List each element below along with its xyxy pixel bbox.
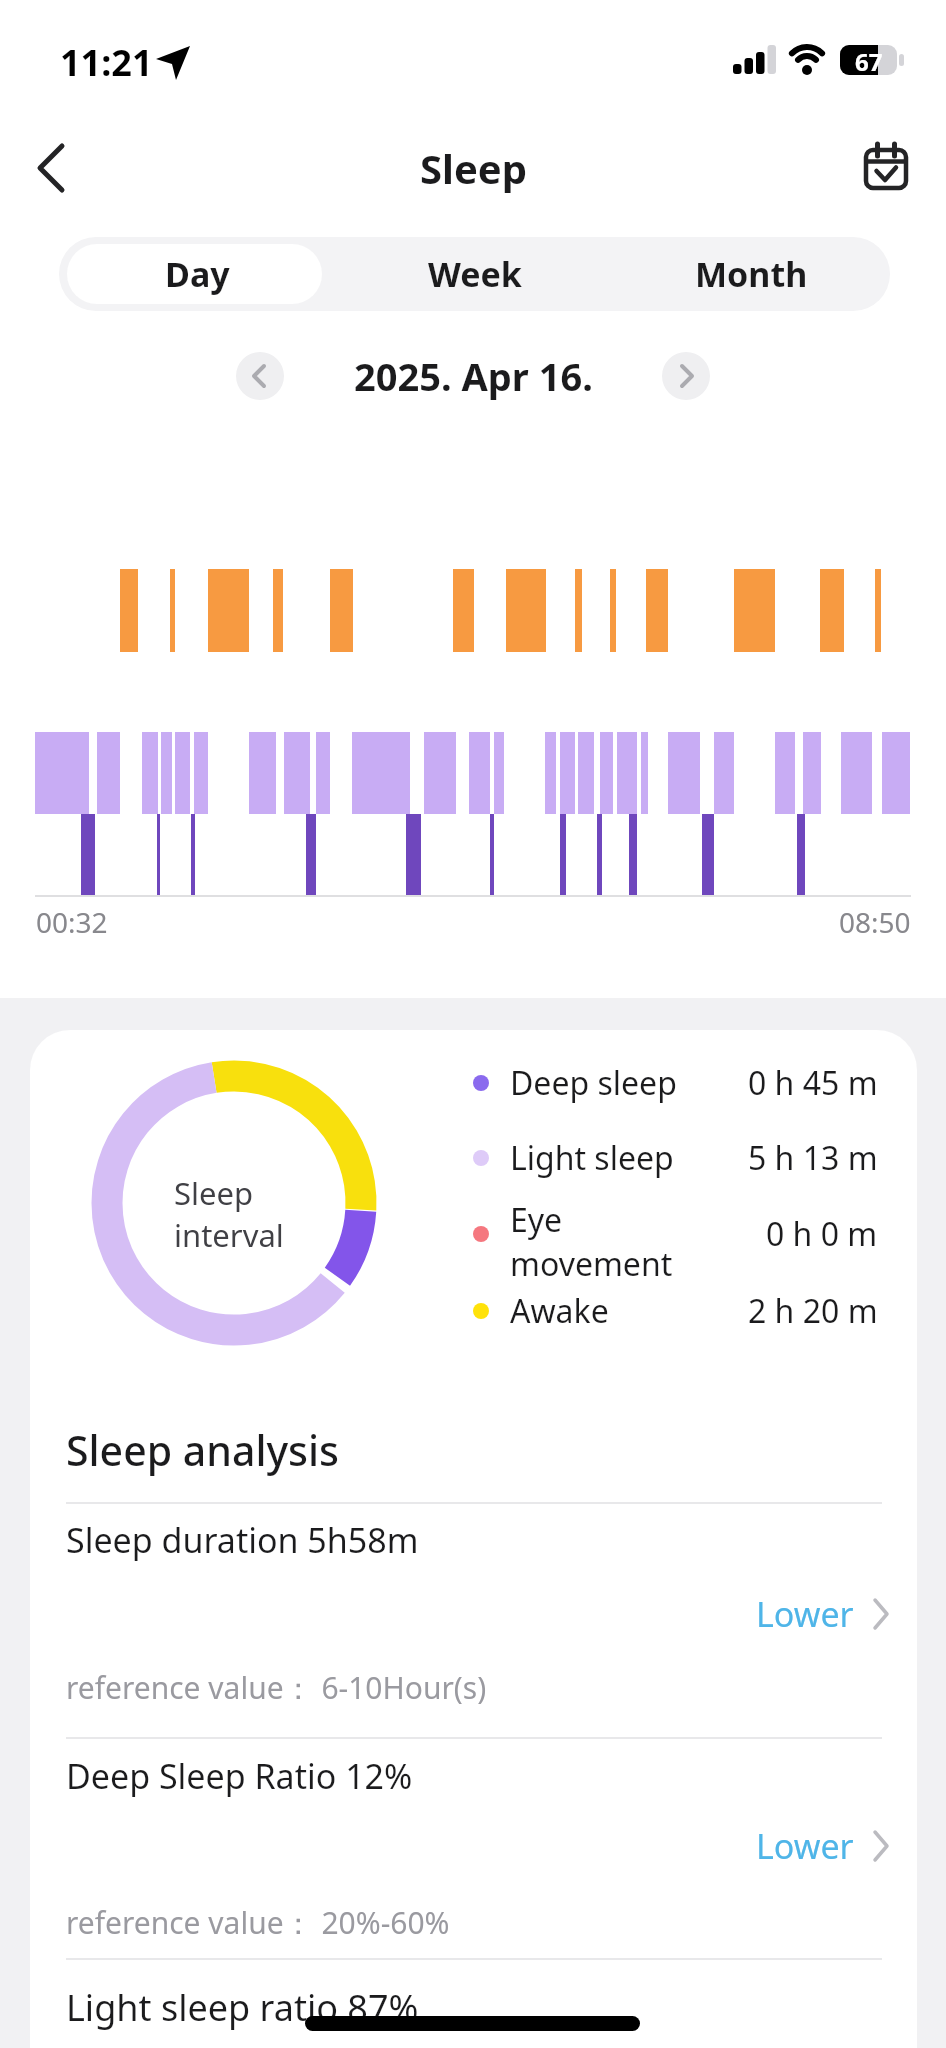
staticText: Eye [510,1198,563,1242]
staticText: Sleep [174,1172,254,1214]
staticText: Lower [756,1591,854,1637]
staticText: reference value： 20%-60% [66,1902,450,1943]
staticText: movement [510,1242,673,1286]
staticText: Light sleep [510,1136,674,1180]
button[interactable]: Week [336,237,613,311]
button[interactable]: Lower [700,1816,890,1876]
staticText: Sleep duration 5h58m [66,1517,419,1563]
staticText: Day [165,251,230,297]
staticText: Awake [510,1289,609,1333]
button[interactable] [26,136,86,200]
staticText: 2 h 20 m [748,1289,878,1333]
staticText: Deep sleep [510,1061,677,1105]
staticText: reference value： 6-10Hour(s) [66,1667,487,1708]
staticText: Sleep [420,141,527,195]
staticText: Light sleep ratio 87% [66,1983,419,2032]
button[interactable] [236,352,284,400]
staticText: 0 h 0 m [766,1212,878,1256]
staticText: interval [174,1214,284,1256]
staticText: 08:50 [839,903,911,941]
staticText: 2025. Apr 16. [354,350,593,402]
staticText: 0 h 45 m [748,1061,878,1105]
button[interactable]: Lower [700,1584,890,1644]
button[interactable] [856,136,916,196]
staticText: 5 h 13 m [748,1136,878,1180]
staticText: Lower [756,1823,854,1869]
staticText: Sleep analysis [66,1422,340,1478]
button[interactable] [662,352,710,400]
staticText: Deep Sleep Ratio 12% [66,1753,413,1799]
button[interactable]: Month [613,237,890,311]
staticText: Month [695,251,808,297]
staticText: 67 [855,45,883,75]
button[interactable]: Day [59,237,336,311]
staticText: 00:32 [36,903,108,941]
staticText: Week [428,251,522,297]
staticText: 11:21 [60,38,153,84]
